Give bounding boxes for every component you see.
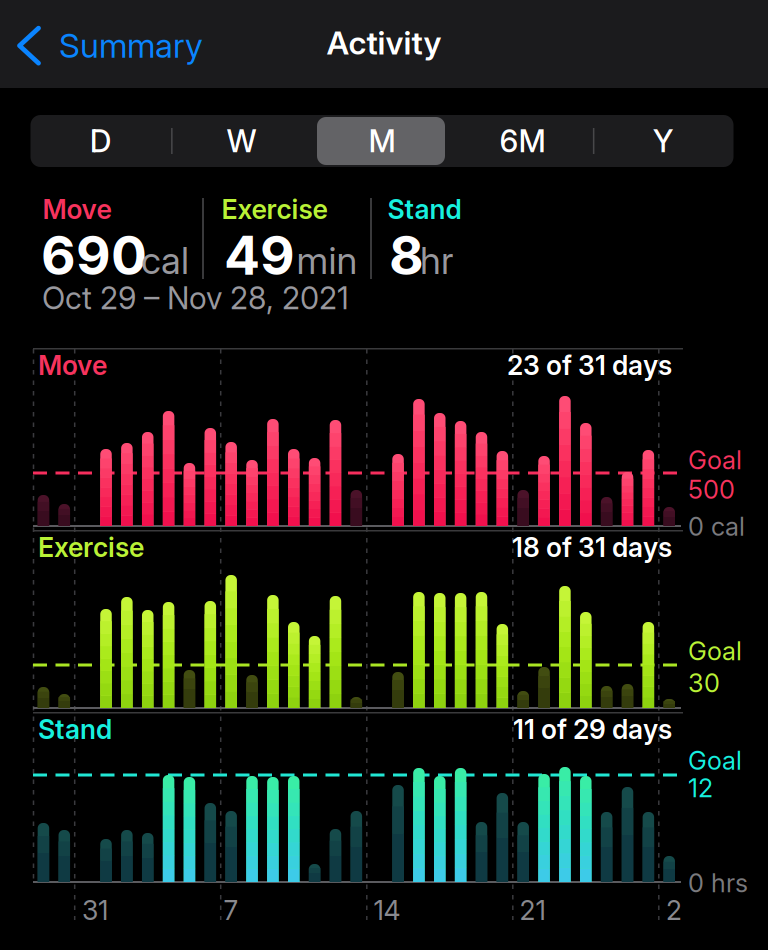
staticText: Goal — [688, 745, 742, 775]
staticText: cal — [141, 238, 189, 282]
staticText: Goal — [688, 445, 742, 475]
button[interactable]: Y — [593, 115, 733, 167]
staticText: Stand — [387, 193, 461, 225]
staticText: Y — [653, 123, 674, 159]
staticText: Activity — [326, 24, 441, 62]
staticText: Oct 29 – Nov 28, 2021 — [42, 280, 349, 316]
staticText: 31 — [82, 894, 108, 926]
staticText: Summary — [59, 26, 203, 65]
staticText: M — [368, 123, 395, 159]
button[interactable]: 6M — [452, 115, 593, 167]
button[interactable]: Summary — [16, 26, 203, 65]
staticText: 690 — [41, 224, 147, 287]
staticText: 12 — [688, 773, 713, 803]
staticText: Move — [42, 193, 111, 225]
staticText: 30 — [688, 668, 720, 698]
staticText: 18 of 31 days — [512, 531, 672, 563]
button[interactable]: M — [312, 115, 452, 167]
staticText: W — [226, 123, 256, 159]
staticText: 2 — [666, 894, 682, 926]
staticText: D — [90, 123, 112, 159]
staticText: 6M — [500, 123, 546, 159]
staticText: Move — [38, 349, 107, 381]
staticText: 0 cal — [688, 511, 745, 541]
staticText: 500 — [688, 474, 735, 504]
button[interactable]: D — [30, 115, 171, 167]
staticText: 8 — [389, 224, 424, 287]
staticText: 14 — [373, 894, 400, 926]
staticText: Exercise — [38, 531, 144, 563]
staticText: Goal — [688, 636, 742, 666]
staticText: Stand — [38, 713, 112, 745]
staticText: hr — [420, 238, 453, 282]
button[interactable]: W — [171, 115, 312, 167]
staticText: min — [296, 238, 357, 282]
staticText: 21 — [519, 894, 545, 926]
staticText: 11 of 29 days — [513, 713, 672, 745]
staticText: Exercise — [221, 193, 327, 225]
staticText: 49 — [224, 224, 295, 287]
staticText: 0 hrs — [688, 868, 748, 898]
staticText: 7 — [223, 894, 238, 926]
staticText: 23 of 31 days — [507, 349, 672, 381]
